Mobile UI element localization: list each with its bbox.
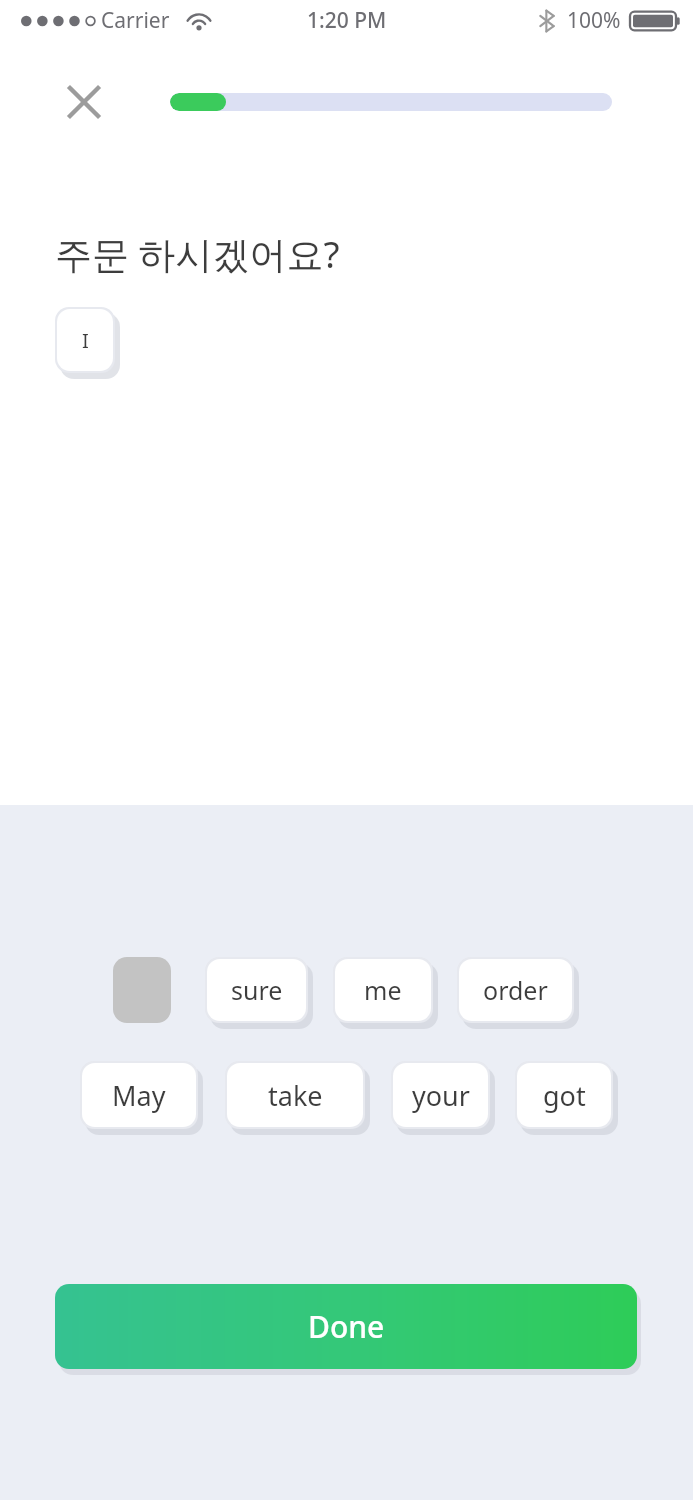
staticText: your [412, 1077, 470, 1114]
staticText: Done [308, 1306, 385, 1347]
staticText: 주문 하시겠어요? [55, 228, 340, 279]
button[interactable]: May [80, 1061, 198, 1129]
staticText: take [268, 1077, 323, 1114]
button[interactable]: Close [56, 74, 112, 130]
staticText: me [364, 973, 402, 1007]
staticText: sure [231, 973, 283, 1007]
button[interactable]: your [391, 1061, 490, 1129]
staticText: Carrier [101, 6, 170, 35]
staticText: 100% [567, 6, 621, 35]
button[interactable]: sure [205, 957, 308, 1023]
staticText: 1:20 PM [307, 6, 387, 35]
staticText: I [82, 327, 89, 354]
staticText: order [483, 973, 548, 1007]
button[interactable]: order [457, 957, 574, 1023]
button[interactable]: got [515, 1061, 613, 1129]
button[interactable]: I [55, 307, 115, 373]
button[interactable]: take [225, 1061, 365, 1129]
button[interactable]: me [333, 957, 433, 1023]
button[interactable]: Done [55, 1284, 637, 1369]
staticText: May [112, 1077, 166, 1114]
staticText: got [543, 1077, 586, 1114]
